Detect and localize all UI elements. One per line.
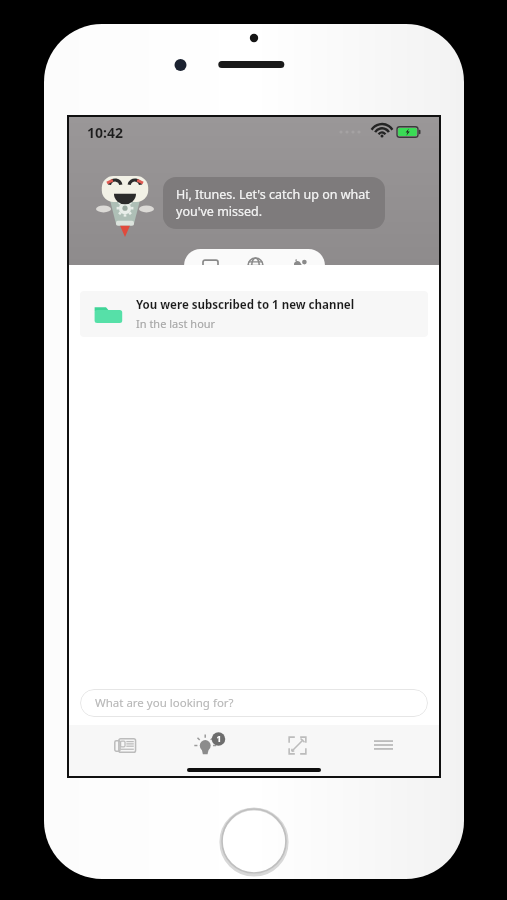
staticText: 1 xyxy=(213,733,225,745)
staticText: 10:42 xyxy=(87,123,123,142)
button[interactable]: What are you looking for? xyxy=(80,689,428,717)
staticText: In the last hour xyxy=(136,316,216,331)
button[interactable]: You were subscribed to 1 new channel xyxy=(80,291,428,337)
staticText: Hi, Itunes. Let's catch up on what you'v… xyxy=(176,186,372,220)
staticText: You were subscribed to 1 new channel xyxy=(136,297,355,313)
staticText: What are you looking for? xyxy=(95,695,234,711)
button[interactable]: News xyxy=(95,725,155,765)
button[interactable]: Menu xyxy=(353,725,413,765)
button[interactable]: Discover xyxy=(237,249,273,282)
button[interactable]: Compose xyxy=(267,725,327,765)
button[interactable]: Notifications xyxy=(281,249,317,282)
button[interactable]: Ideas, 1 new xyxy=(181,725,241,765)
button[interactable]: Inbox xyxy=(192,249,228,282)
